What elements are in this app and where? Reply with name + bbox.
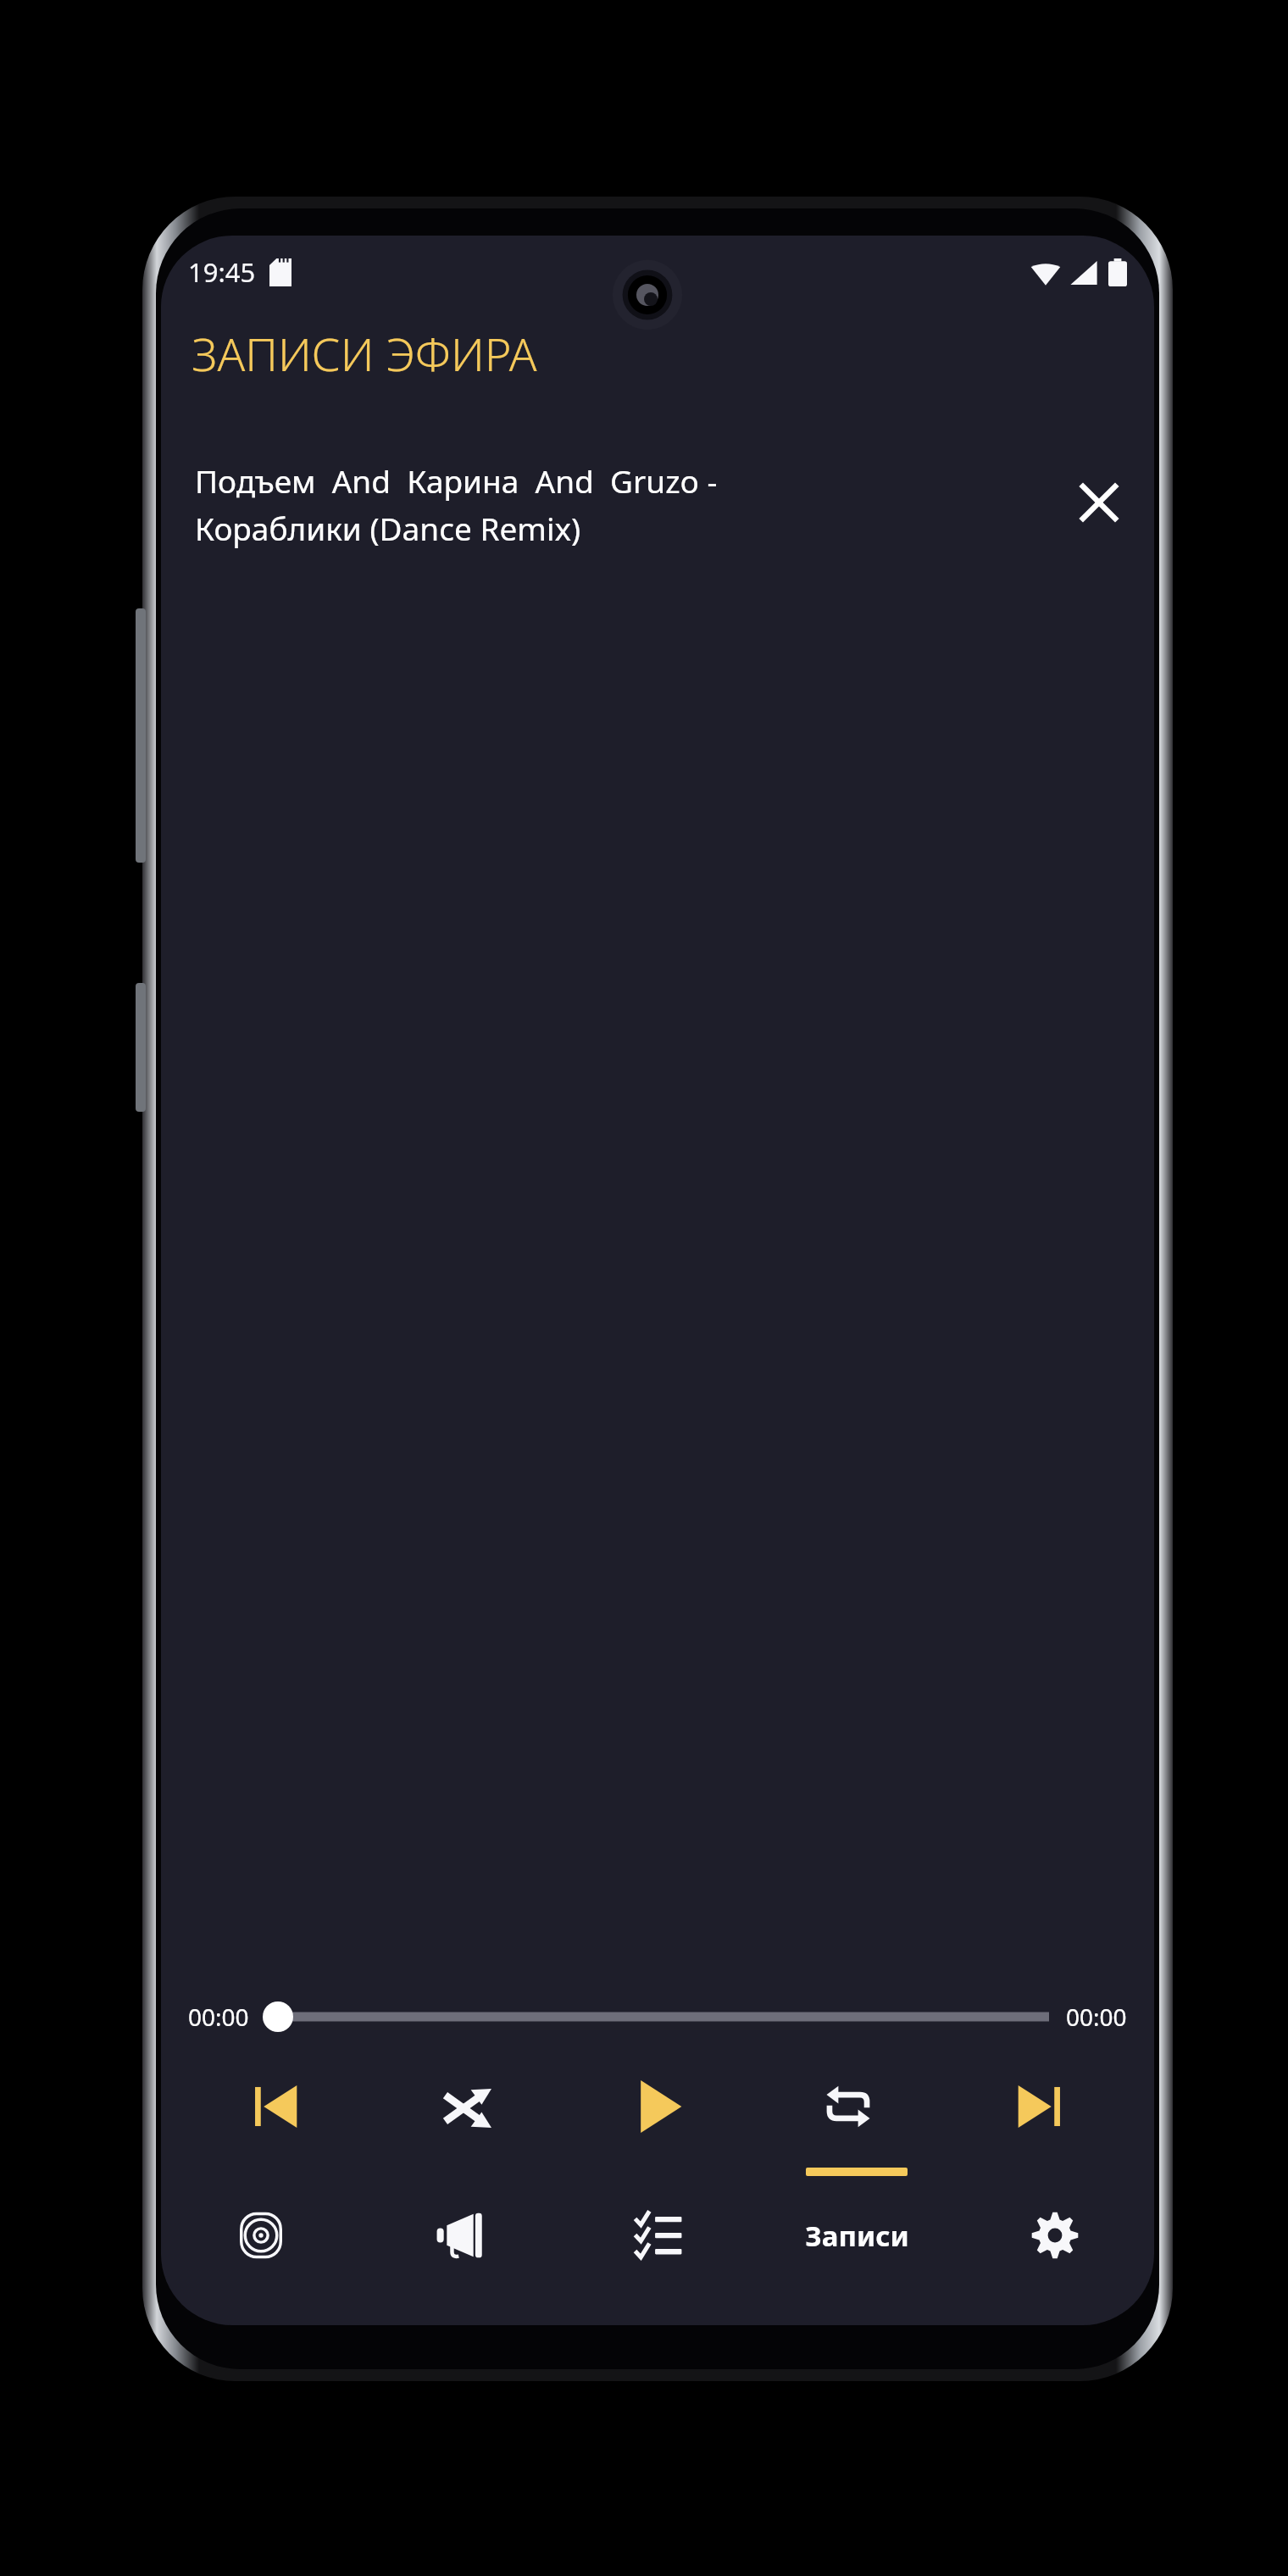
button[interactable]: Shuffle [371,2054,562,2159]
staticText: 00:00 [188,2001,249,2033]
button[interactable]: Next track [943,2054,1134,2159]
staticText: ЗАПИСИ ЭФИРА [192,322,537,385]
button[interactable]: Close [1068,471,1130,534]
button[interactable]: Radio [161,2168,360,2303]
staticText: 19:45 [188,254,256,290]
staticText: Подъем And Карина And Gruzo - Кораблики … [195,459,1054,550]
staticText: 00:00 [1066,2001,1127,2033]
button[interactable]: Записи [758,2168,956,2303]
button[interactable]: Play [562,2054,752,2159]
button[interactable]: Repeat [752,2054,943,2159]
button[interactable]: Settings [956,2168,1154,2303]
button[interactable]: Announcements [360,2168,559,2303]
button[interactable]: Previous track [181,2054,371,2159]
staticText: Записи [805,2217,909,2255]
button[interactable]: Playlist [559,2168,758,2303]
button[interactable]: Seek [266,1990,1049,2044]
